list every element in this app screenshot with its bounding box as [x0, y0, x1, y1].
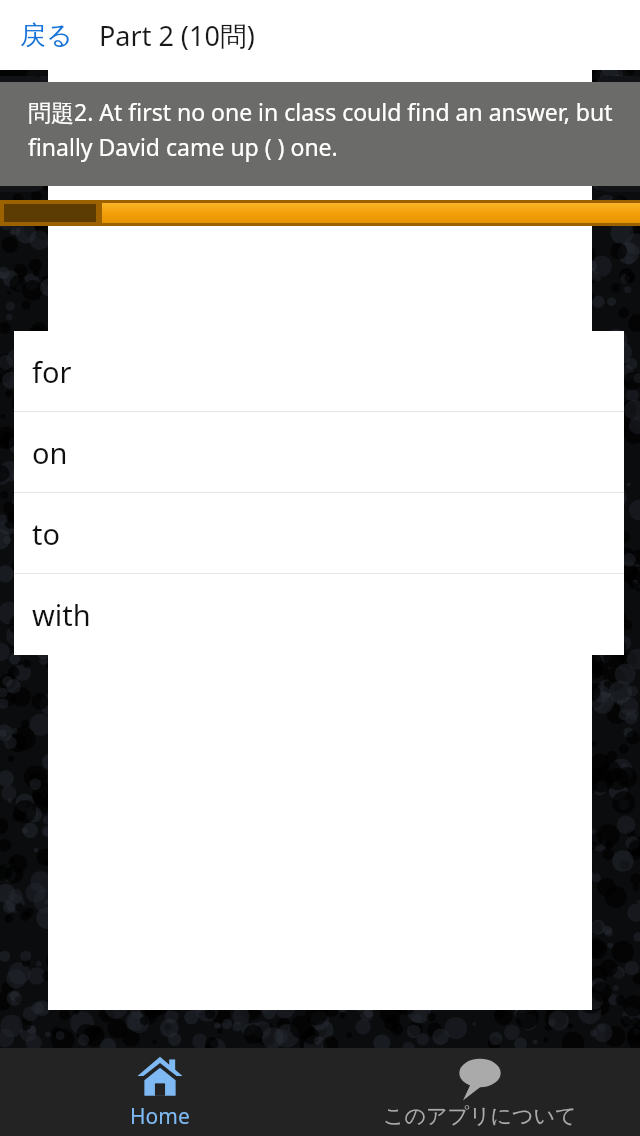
button[interactable]: Home	[0, 1048, 320, 1136]
staticText: on	[32, 433, 68, 472]
staticText: to	[32, 514, 61, 553]
staticText: for	[32, 352, 72, 391]
staticText: このアプリについて	[383, 1103, 577, 1129]
staticText: Part 2 (10問)	[99, 17, 255, 54]
staticText: Home	[130, 1102, 190, 1131]
button[interactable]: on	[14, 412, 624, 493]
other: About this app	[457, 1056, 503, 1102]
button[interactable]: 戻る	[16, 11, 77, 60]
staticText: 問題2. At first no one in class could find…	[28, 96, 622, 163]
button[interactable]: About this app	[320, 1048, 640, 1136]
button[interactable]: for	[14, 331, 624, 412]
staticText: with	[32, 595, 91, 634]
button[interactable]: with	[14, 574, 624, 655]
staticText: 戻る	[20, 19, 73, 52]
button[interactable]: to	[14, 493, 624, 574]
